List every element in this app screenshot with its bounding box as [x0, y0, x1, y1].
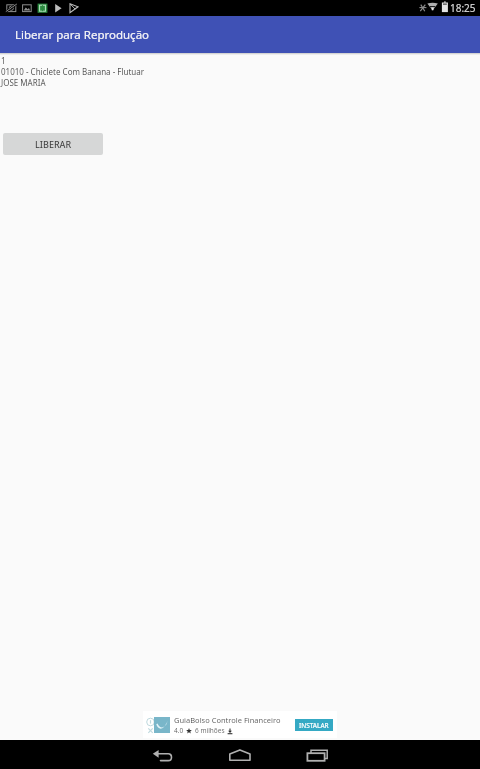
button[interactable]: LIBERAR: [3, 133, 103, 155]
staticText: JOSE MARIA: [1, 77, 46, 88]
button[interactable]: INSTALAR: [295, 719, 333, 731]
button[interactable]: Home: [219, 740, 259, 769]
staticText: LIBERAR: [35, 138, 72, 150]
staticText: Liberar para Reprodução: [15, 27, 150, 43]
staticText: 1: [1, 55, 6, 66]
staticText: GuiaBolso Controle Financeiro: [174, 715, 281, 725]
staticText: INSTALAR: [299, 721, 329, 730]
staticText: 01010 - Chiclete Com Banana - Flutuar: [1, 66, 145, 77]
staticText: 4.0: [174, 726, 184, 735]
staticText: 6 milhões: [195, 726, 225, 735]
button[interactable]: GuiaBolso Controle Financeiro: [143, 711, 337, 738]
button[interactable]: Back: [142, 740, 182, 769]
staticText: 18:25: [450, 1, 476, 15]
button[interactable]: Recent apps: [297, 740, 337, 769]
